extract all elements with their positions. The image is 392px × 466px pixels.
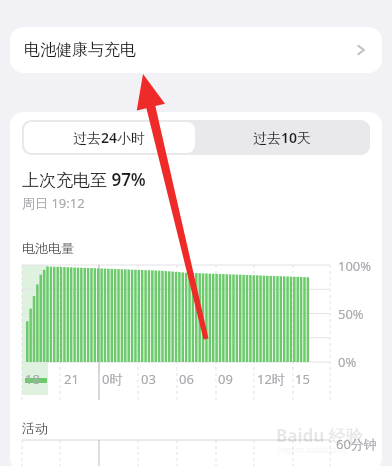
staticText: 0时 bbox=[102, 370, 123, 388]
staticText: 12时 bbox=[257, 370, 285, 388]
button[interactable]: 过去24小时 bbox=[24, 122, 195, 153]
staticText: 周日 19:12 bbox=[22, 194, 85, 212]
staticText: 电池电量 bbox=[22, 240, 74, 256]
button[interactable]: 电池健康与充电 bbox=[10, 27, 382, 73]
staticText: 15 bbox=[295, 370, 310, 388]
other: 打开电池健康与充电 bbox=[354, 43, 368, 57]
staticText: 06 bbox=[179, 370, 194, 388]
staticText: 过去10天 bbox=[253, 128, 312, 147]
staticText: 电池健康与充电 bbox=[24, 40, 136, 60]
staticText: 18 bbox=[25, 370, 40, 388]
staticText: jingyan.baidu.com bbox=[277, 444, 347, 455]
staticText: 100% bbox=[338, 257, 372, 275]
staticText: 03 bbox=[141, 370, 156, 388]
staticText: 21 bbox=[64, 370, 79, 388]
staticText: 0% bbox=[338, 353, 357, 371]
staticText: Baidu 经验 bbox=[276, 424, 363, 447]
staticText: 上次充电至 97% bbox=[22, 168, 146, 191]
staticText: 50% bbox=[338, 305, 364, 323]
staticText: 活动 bbox=[22, 420, 48, 436]
button[interactable]: 过去10天 bbox=[197, 122, 368, 153]
staticText: 09 bbox=[218, 370, 233, 388]
staticText: 过去24小时 bbox=[73, 128, 146, 147]
staticText: 60分钟 bbox=[336, 435, 377, 453]
